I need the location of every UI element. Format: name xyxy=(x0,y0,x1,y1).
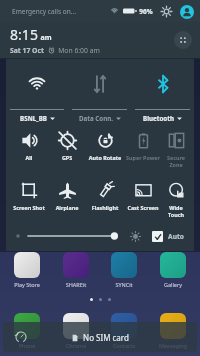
button[interactable]: Screen Shot xyxy=(10,180,48,211)
button[interactable]: Settings xyxy=(159,4,173,18)
staticText: BSNL_BB xyxy=(20,114,47,122)
button[interactable]: Brightness xyxy=(28,229,124,243)
staticText: Gallery xyxy=(152,281,194,288)
button[interactable]: Data Conn. xyxy=(68,109,131,122)
button[interactable]: Airplane mode xyxy=(48,180,86,211)
staticText: Play Store xyxy=(6,281,48,288)
button[interactable]: Sound profile All xyxy=(10,130,48,161)
staticText: Auto xyxy=(168,232,184,241)
button[interactable]: Edit quick settings xyxy=(174,31,192,49)
button[interactable]: Cast Screen xyxy=(124,180,162,211)
button[interactable]: Wi-Fi xyxy=(6,59,68,109)
staticText: Cast Screen xyxy=(124,204,162,211)
button[interactable]: Bluetooth xyxy=(131,59,194,109)
staticText: GPS xyxy=(48,154,86,161)
button[interactable]: User profile xyxy=(179,4,194,19)
staticText: Flashlight xyxy=(86,204,124,211)
button[interactable]: Auto xyxy=(150,229,186,244)
button[interactable]: BSNL_BB xyxy=(6,109,68,122)
staticText: Auto Rotate xyxy=(86,154,124,161)
staticText: Secure Zone xyxy=(162,154,190,168)
staticText: Super Power xyxy=(124,154,162,161)
staticText: SHAREit xyxy=(55,281,97,288)
button[interactable]: Data Connection xyxy=(68,59,131,109)
staticText: Chrome xyxy=(55,342,97,349)
button[interactable]: Bluetooth xyxy=(131,109,194,122)
button[interactable]: Auto Rotate xyxy=(86,130,124,161)
staticText: Data Conn. xyxy=(79,114,113,122)
button[interactable]: Flashlight xyxy=(86,180,124,211)
staticText: Mon 6:00 am xyxy=(58,46,100,55)
staticText: Messaging xyxy=(152,342,194,349)
staticText: am xyxy=(40,33,52,43)
button[interactable]: Wide Touch xyxy=(162,180,190,218)
staticText: Contacts xyxy=(103,342,145,349)
staticText: Sat 17 Oct xyxy=(10,46,44,55)
staticText: Bluetooth xyxy=(143,114,174,122)
staticText: Phone xyxy=(6,342,48,349)
button[interactable]: Super Power Saving xyxy=(124,130,162,161)
button[interactable]: Notification history xyxy=(3,322,197,352)
button[interactable]: Secure Zone xyxy=(162,130,190,168)
staticText: SYNCit xyxy=(103,281,145,288)
staticText: All xyxy=(10,154,48,161)
staticText: Airplane xyxy=(48,204,86,211)
staticText: Wide Touch xyxy=(162,204,190,218)
staticText: No SIM card xyxy=(83,332,129,343)
button[interactable]: Notification history xyxy=(13,329,29,345)
staticText: Emergency calls on... xyxy=(12,7,76,16)
staticText: 96% xyxy=(139,7,153,16)
button[interactable]: GPS xyxy=(48,130,86,161)
staticText: Screen Shot xyxy=(10,204,48,211)
staticText: 8:15 xyxy=(10,25,38,44)
